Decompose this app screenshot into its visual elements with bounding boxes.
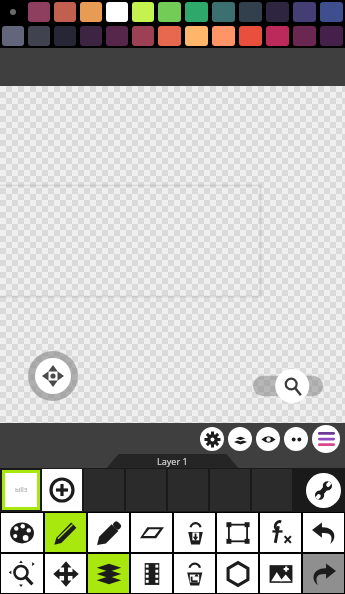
button[interactable]: Layers	[88, 554, 129, 593]
button[interactable]: ыllз	[5, 473, 37, 507]
button[interactable]	[293, 26, 316, 46]
button[interactable]	[132, 26, 154, 46]
button[interactable]: Settings	[200, 427, 224, 451]
button[interactable]	[54, 2, 76, 22]
button[interactable]	[80, 26, 102, 46]
button[interactable]: Zoom	[253, 369, 323, 403]
button[interactable]	[320, 2, 343, 22]
button[interactable]: Fill tool	[174, 554, 215, 593]
button[interactable]	[28, 26, 50, 46]
button[interactable]: Layers	[228, 427, 252, 451]
button[interactable]	[212, 2, 235, 22]
button[interactable]: Palette	[1, 513, 43, 552]
button[interactable]	[54, 26, 76, 46]
button[interactable]	[185, 2, 208, 22]
button[interactable]	[2, 26, 24, 46]
button[interactable]: Move	[45, 554, 86, 593]
button[interactable]	[185, 26, 208, 46]
button[interactable]	[28, 2, 50, 22]
staticText: Layer 1	[157, 455, 188, 467]
button[interactable]: Zoom tool	[1, 554, 43, 593]
button[interactable]: Eyedropper	[88, 513, 129, 552]
button[interactable]	[80, 2, 102, 22]
staticText: ыllз	[15, 485, 28, 495]
button[interactable]: Fill	[174, 513, 215, 552]
button[interactable]	[239, 26, 262, 46]
button[interactable]: Redo	[303, 554, 344, 593]
button[interactable]	[106, 26, 128, 46]
button[interactable]: Pan	[28, 351, 78, 401]
button[interactable]: Undo	[303, 513, 344, 552]
button[interactable]	[158, 2, 181, 22]
button[interactable]	[212, 26, 235, 46]
button[interactable]: Pencil	[45, 513, 86, 552]
button[interactable]: Effects	[260, 513, 301, 552]
button[interactable]	[320, 26, 343, 46]
button[interactable]	[266, 2, 289, 22]
button[interactable]: Add image	[260, 554, 301, 593]
button[interactable]	[239, 2, 262, 22]
button[interactable]: Eraser	[131, 513, 172, 552]
button[interactable]: More options	[284, 427, 308, 451]
button[interactable]: Shape	[217, 554, 258, 593]
button[interactable]: Transform	[217, 513, 258, 552]
button[interactable]	[158, 26, 181, 46]
button[interactable]: Add layer	[42, 469, 82, 511]
button[interactable]: Tools	[306, 473, 341, 508]
button[interactable]	[2, 2, 24, 22]
button[interactable]	[266, 26, 289, 46]
button[interactable]	[132, 2, 154, 22]
button[interactable]	[293, 2, 316, 22]
button[interactable]: Visibility	[256, 427, 280, 451]
button[interactable]: Menu	[312, 425, 340, 453]
button[interactable]: Frames	[131, 554, 172, 593]
button[interactable]	[106, 2, 128, 22]
